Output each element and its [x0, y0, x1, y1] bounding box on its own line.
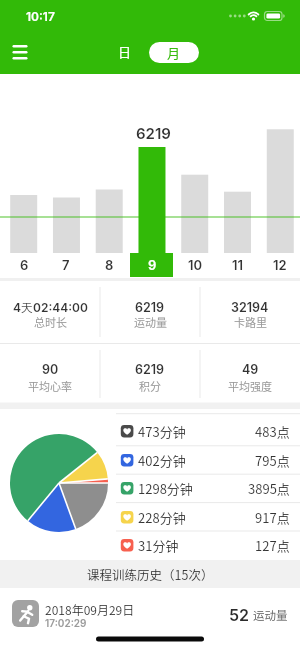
staticText: 3895点 [248, 479, 290, 498]
button[interactable]: 7 [45, 253, 87, 277]
staticText: 10 [188, 257, 203, 273]
staticText: 积分 [139, 378, 161, 394]
staticText: 4天02:44:00 [13, 300, 88, 315]
staticText: 483点 [255, 422, 290, 441]
button[interactable]: 日 [110, 40, 140, 63]
staticText: 8 [105, 257, 114, 273]
button[interactable]: 228分钟 [118, 503, 300, 531]
staticText: 运动量 [134, 314, 167, 330]
staticText: 1298分钟 [138, 479, 193, 498]
staticText: 平均强度 [228, 378, 272, 394]
staticText: 9 [148, 257, 157, 273]
staticText: 2018年09月29日 [45, 601, 135, 618]
button[interactable] [8, 41, 32, 63]
staticText: 127点 [255, 536, 290, 555]
staticText: 17:02:29 [45, 617, 87, 629]
button[interactable]: 10 [174, 253, 216, 277]
staticText: 52 [229, 605, 250, 624]
staticText: 课程训练历史（15次） [87, 565, 214, 583]
button[interactable]: 8 [88, 253, 130, 277]
staticText: 12 [273, 257, 287, 273]
button[interactable]: 402分钟 [118, 446, 300, 474]
staticText: 473分钟 [138, 422, 186, 441]
button[interactable]: 473分钟 [118, 417, 300, 445]
staticText: 6219 [135, 300, 165, 315]
staticText: 795点 [255, 451, 290, 470]
staticText: 402分钟 [138, 451, 186, 470]
staticText: 7 [62, 257, 70, 273]
button[interactable]: 31分钟 [118, 531, 300, 559]
staticText: 6219 [136, 124, 171, 142]
staticText: 11 [232, 257, 243, 273]
staticText: 10:17 [26, 9, 55, 24]
staticText: 917点 [255, 508, 290, 527]
button[interactable]: 1298分钟 [118, 474, 300, 502]
staticText: 6219 [135, 362, 165, 377]
staticText: 总时长 [34, 314, 67, 330]
staticText: 平均心率 [28, 378, 72, 394]
staticText: 49 [242, 362, 259, 377]
button[interactable]: 2018年09月29日 [0, 588, 300, 634]
staticText: 运动量 [253, 607, 288, 622]
staticText: 31分钟 [138, 536, 179, 555]
staticText: 卡路里 [234, 314, 267, 330]
button[interactable]: 6 [3, 253, 45, 277]
staticText: 90 [42, 362, 59, 377]
button[interactable]: 12 [259, 253, 300, 277]
staticText: 月 [167, 43, 181, 62]
staticText: 6 [20, 257, 29, 273]
staticText: 32194 [231, 300, 269, 315]
button[interactable]: 9 [131, 253, 173, 277]
staticText: 228分钟 [138, 508, 186, 527]
staticText: 日 [118, 42, 132, 61]
button[interactable]: 月 [149, 42, 199, 63]
button[interactable]: 11 [216, 253, 258, 277]
